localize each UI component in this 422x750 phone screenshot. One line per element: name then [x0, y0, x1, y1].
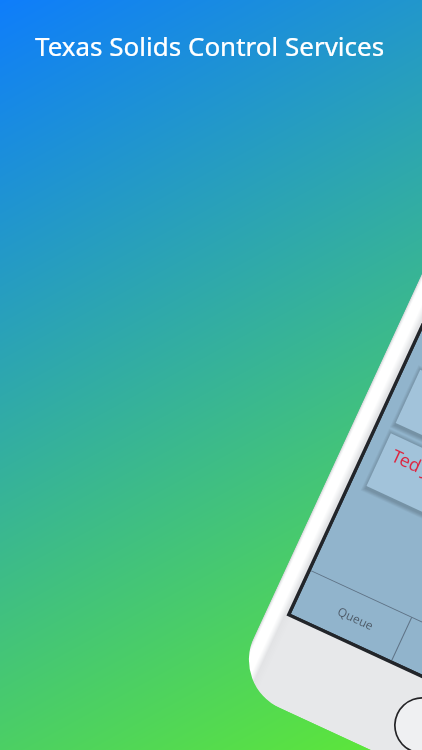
staticText: Texas Solids Control Services	[35, 28, 385, 63]
